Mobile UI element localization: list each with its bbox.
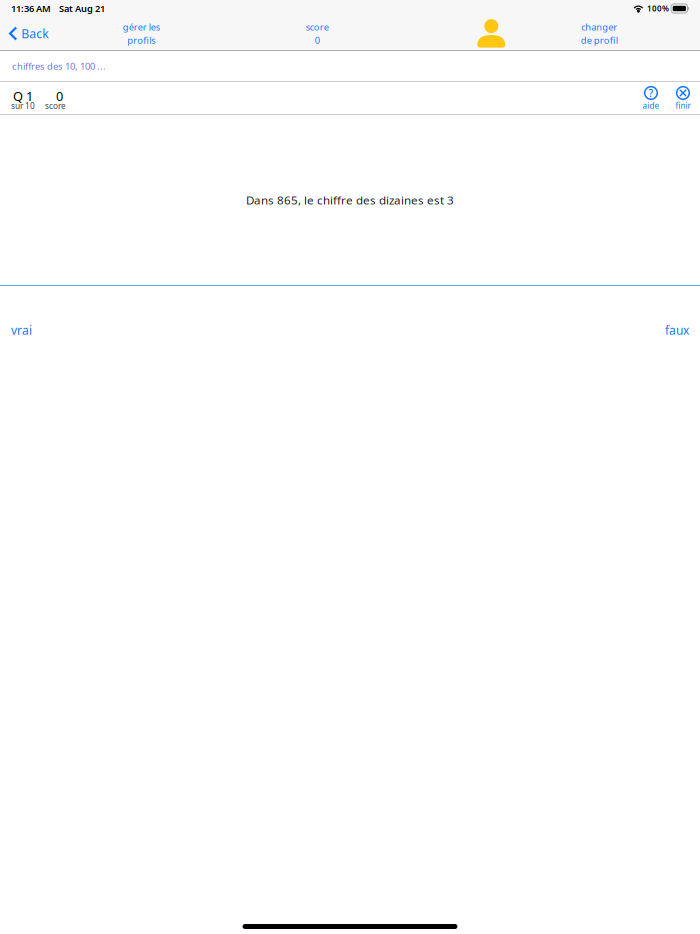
button[interactable]: score [288,17,346,50]
staticText: profils [127,34,155,46]
staticText: Back [21,25,49,42]
staticText: sur 10 [11,100,35,111]
staticText: faux [665,322,689,338]
staticText: Dans 865, le chiffre des dizaines est 3 [246,192,454,208]
staticText: de profil [581,34,618,46]
staticText: ? [648,86,653,100]
button[interactable]: Profil actuel [466,17,516,50]
staticText: aide [642,100,659,111]
staticText: finir [675,100,690,111]
staticText: gérer les [123,21,160,33]
button[interactable]: changer [570,17,628,50]
staticText: score [306,21,329,33]
button[interactable]: Back [0,18,58,48]
staticText: 11:36 AM [11,2,51,15]
button[interactable]: aide [637,82,665,114]
staticText: 100% [647,3,669,14]
staticText: Q 1 [13,87,33,105]
staticText: vrai [11,322,32,338]
button[interactable]: gérer les [112,17,170,50]
staticText: 0 [56,87,63,105]
staticText: 0 [315,34,320,46]
staticText: score [45,100,66,111]
button[interactable]: faux [654,286,700,374]
staticText: Sat Aug 21 [59,2,105,15]
button[interactable]: finir [669,82,697,114]
staticText: chiffres des 10, 100 ... [12,60,106,72]
staticText: changer [581,21,617,33]
button[interactable]: vrai [0,286,43,374]
